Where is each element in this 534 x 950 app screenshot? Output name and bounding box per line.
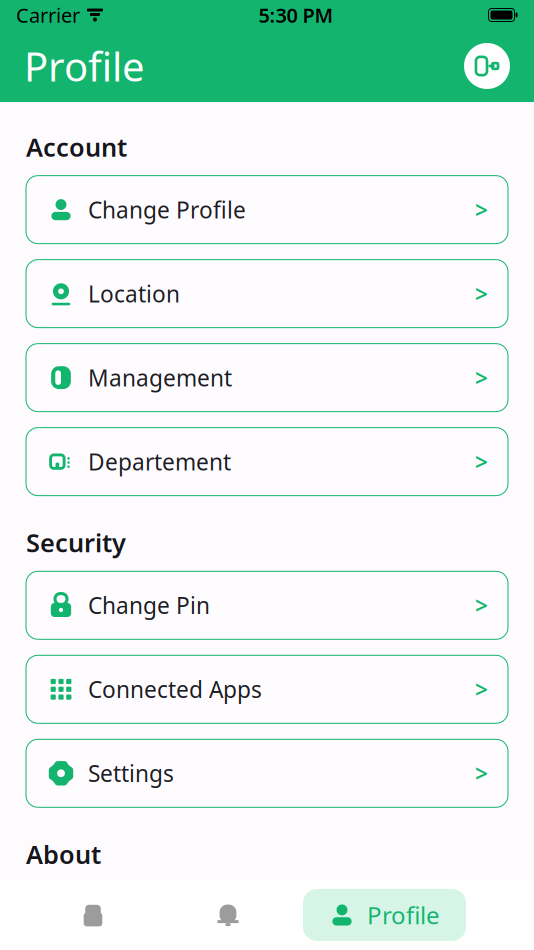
staticText: Departement xyxy=(88,447,231,477)
button[interactable]: Location xyxy=(26,260,508,328)
staticText: > xyxy=(475,758,488,788)
staticText: Settings xyxy=(88,758,174,788)
button[interactable]: About App xyxy=(26,883,508,950)
staticText: Change Profile xyxy=(88,195,246,225)
staticText: > xyxy=(475,674,488,704)
button[interactable]: Notifications xyxy=(168,885,288,945)
button[interactable]: Departement xyxy=(26,428,508,496)
staticText: Management xyxy=(88,363,232,393)
staticText: > xyxy=(475,279,488,309)
staticText: > xyxy=(475,447,488,477)
staticText: Security xyxy=(26,526,126,559)
staticText: > xyxy=(475,195,488,225)
staticText: Profile xyxy=(24,39,145,92)
button[interactable]: Profile xyxy=(303,889,466,941)
staticText: Carrier xyxy=(16,2,80,28)
staticText: Profile xyxy=(367,899,440,931)
staticText: Change Pin xyxy=(88,590,210,620)
staticText: Account xyxy=(26,130,127,164)
staticText: > xyxy=(475,590,488,620)
button[interactable]: Change Pin xyxy=(26,571,508,639)
staticText: Location xyxy=(88,279,180,309)
button[interactable]: Management xyxy=(26,344,508,412)
staticText: About xyxy=(26,837,101,871)
staticText: > xyxy=(475,363,488,393)
staticText: Connected Apps xyxy=(88,674,262,704)
staticText: 5:30 PM xyxy=(258,2,333,28)
button[interactable]: Change Profile xyxy=(26,176,508,244)
staticText: About App xyxy=(88,902,200,932)
button[interactable]: Home xyxy=(18,885,168,945)
button[interactable]: Settings xyxy=(26,739,508,807)
button[interactable]: Log out xyxy=(464,43,510,89)
button[interactable]: Connected Apps xyxy=(26,655,508,723)
